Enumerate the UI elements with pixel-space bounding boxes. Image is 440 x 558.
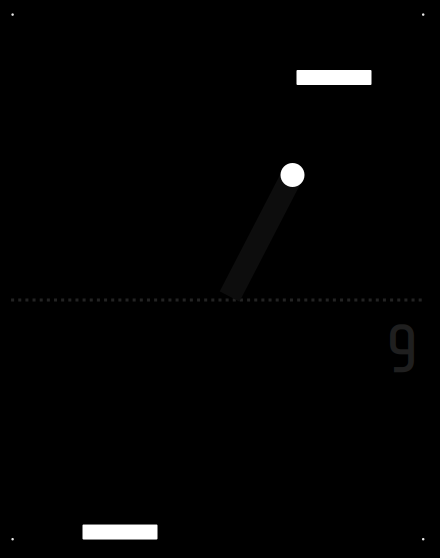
button[interactable]: Player paddle <box>82 524 157 539</box>
button[interactable]: Opponent paddle <box>296 70 371 85</box>
staticText: 9 <box>383 312 420 389</box>
